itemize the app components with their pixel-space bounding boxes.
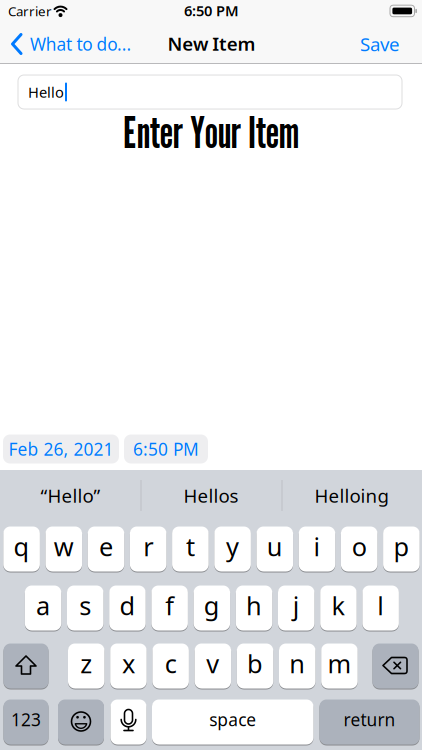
staticText: w	[54, 530, 74, 563]
staticText: e	[99, 530, 113, 563]
staticText: New Item	[167, 31, 255, 56]
staticText: l	[377, 589, 384, 622]
staticText: b	[247, 647, 263, 680]
staticText: d	[119, 589, 135, 622]
staticText: v	[206, 647, 219, 680]
staticText: s	[79, 589, 91, 622]
staticText: t	[186, 530, 195, 563]
staticText: Hellos	[183, 483, 238, 508]
staticText: 6:50 PM	[184, 1, 239, 20]
staticText: Save	[360, 32, 400, 56]
staticText: q	[14, 530, 30, 563]
staticText: Enter Your Item	[123, 107, 299, 158]
staticText: Hello	[28, 82, 64, 102]
staticText: x	[122, 647, 135, 680]
staticText: y	[226, 530, 239, 563]
staticText: g	[204, 589, 220, 622]
staticText: 123	[11, 708, 41, 731]
staticText: r	[143, 530, 153, 563]
staticText: h	[246, 589, 262, 622]
staticText: return	[343, 708, 395, 731]
staticText: p	[393, 530, 409, 563]
staticText: j	[293, 589, 300, 622]
staticText: What to do...	[30, 32, 131, 55]
staticText: m	[327, 647, 351, 680]
staticText: Helloing	[314, 483, 388, 508]
staticText: z	[80, 647, 92, 680]
staticText: f	[165, 589, 174, 622]
staticText: 6:50 PM	[133, 437, 199, 460]
staticText: o	[352, 530, 367, 563]
staticText: a	[36, 589, 50, 622]
staticText: i	[313, 530, 320, 563]
staticText: n	[289, 647, 305, 680]
staticText: u	[267, 530, 283, 563]
staticText: Carrier	[8, 2, 52, 20]
staticText: k	[331, 589, 345, 622]
staticText: space	[209, 708, 256, 731]
staticText: c	[165, 647, 177, 680]
staticText: “Hello”	[40, 483, 100, 508]
staticText: Feb 26, 2021	[8, 437, 113, 460]
